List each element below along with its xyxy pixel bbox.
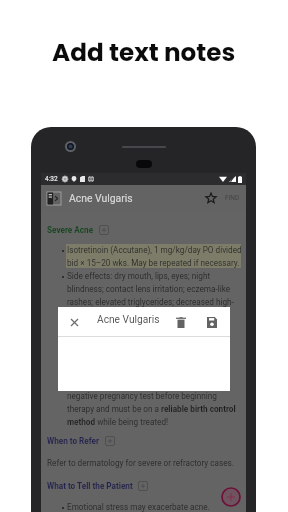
- staticText: bid × 15–20 wks. May be repeated if nece…: [67, 258, 240, 268]
- staticText: Severe Acne: [47, 225, 94, 235]
- button[interactable]: Delete note: [171, 312, 191, 332]
- staticText: method while being treated!: [67, 417, 169, 427]
- button[interactable]: Close: [64, 312, 84, 332]
- staticText: Acne Vulgaris: [97, 314, 160, 326]
- staticText: Side effects: dry mouth, lips, eyes; nig…: [67, 271, 211, 281]
- staticText: What to Tell the Patient: [47, 481, 133, 491]
- staticText: 4:32: [45, 175, 58, 183]
- button[interactable]: Save note: [202, 312, 222, 332]
- staticText: Refer to dermatology for severe or refra…: [47, 458, 234, 468]
- button[interactable]: FIND: [222, 189, 243, 207]
- staticText: Emotional stress may exacerbate acne.: [67, 502, 210, 512]
- staticText: therapy and must be on a reliable birth …: [67, 404, 236, 414]
- staticText: rashes; elevated triglycerides; decrease…: [67, 297, 234, 307]
- button[interactable]: Add note: [220, 486, 242, 508]
- staticText: FIND: [225, 194, 240, 202]
- staticText: When to Refer: [47, 436, 100, 446]
- staticText: Isotretinoin (Accutane), 1 mg/kg/day PO …: [67, 245, 242, 255]
- staticText: Add text notes: [52, 35, 236, 70]
- staticText: Acne Vulgaris: [69, 192, 133, 204]
- staticText: blindness; contact lens irritation; ecze…: [67, 284, 231, 294]
- button[interactable]: Open navigation drawer: [44, 188, 64, 208]
- staticText: negative pregnancy test before beginning: [67, 391, 217, 401]
- button[interactable]: Add to favorites: [201, 188, 221, 208]
